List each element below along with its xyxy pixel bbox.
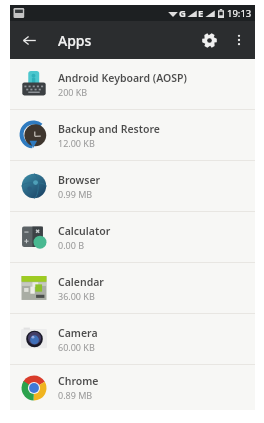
button[interactable]: Chrome: [10, 365, 255, 410]
staticText: Calendar: [58, 275, 104, 289]
button[interactable]: Calculator: [10, 212, 255, 262]
staticText: G: [179, 7, 186, 20]
staticText: 200 KB: [58, 86, 88, 98]
button[interactable]: Backup and Restore: [10, 110, 255, 160]
button[interactable]: Camera: [10, 314, 255, 364]
button[interactable]: Android Keyboard (AOSP): [10, 59, 255, 109]
staticText: Apps: [58, 31, 92, 50]
staticText: Camera: [58, 326, 98, 340]
staticText: Backup and Restore: [58, 122, 160, 136]
staticText: 0.99 MB: [58, 188, 93, 200]
staticText: 12.00 KB: [58, 137, 95, 149]
staticText: Android Keyboard (AOSP): [58, 71, 187, 85]
staticText: 60.00 KB: [58, 341, 95, 353]
button[interactable]: Back: [10, 21, 48, 59]
button[interactable]: More options: [226, 21, 252, 59]
button[interactable]: Browser: [10, 161, 255, 211]
button[interactable]: Calendar: [10, 263, 255, 313]
staticText: E: [198, 7, 204, 20]
staticText: 0.00 B: [58, 239, 85, 251]
staticText: Browser: [58, 173, 101, 187]
staticText: 19:13: [227, 7, 252, 20]
staticText: 0.89 MB: [58, 389, 93, 401]
staticText: Chrome: [58, 374, 99, 388]
button[interactable]: Settings: [192, 21, 226, 59]
staticText: Calculator: [58, 224, 111, 238]
staticText: 36.00 KB: [58, 290, 95, 302]
